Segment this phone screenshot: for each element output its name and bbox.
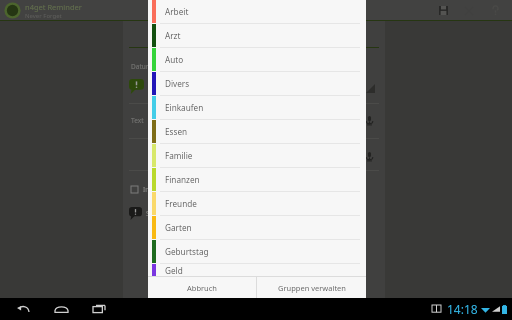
staticText: Arbeit [165, 6, 189, 17]
button[interactable]: Essen [148, 120, 366, 143]
button[interactable]: Divers [148, 72, 366, 95]
button[interactable]: Gruppen verwalten [257, 277, 366, 298]
staticText: Gruppen verwalten [278, 283, 346, 293]
staticText: Familie [165, 150, 193, 161]
button[interactable]: Help [482, 0, 508, 21]
staticText: Abbruch [187, 283, 217, 293]
button[interactable]: Save [430, 0, 456, 21]
button[interactable]: Freunde [148, 192, 366, 215]
staticText: Datum [131, 62, 152, 71]
staticText: Arzt [165, 30, 181, 41]
staticText: Standard [146, 209, 174, 218]
button[interactable]: Geburtstag [148, 240, 366, 263]
button[interactable]: Arbeit [148, 0, 366, 23]
staticText: Freunde [165, 198, 197, 209]
button[interactable]: Garten [148, 216, 366, 239]
staticText: Never Forget [25, 12, 62, 20]
button[interactable]: Back [10, 298, 36, 320]
staticText: Geld [165, 265, 183, 276]
staticText: Essen [165, 126, 188, 137]
staticText: n4get Reminder [25, 2, 82, 12]
staticText: Geburtstag [165, 246, 209, 257]
button[interactable]: Home [48, 298, 74, 320]
staticText: 14:18 [447, 301, 478, 317]
staticText: Finanzen [165, 174, 200, 185]
staticText: Text [131, 116, 144, 125]
button[interactable]: Abbruch [148, 277, 256, 298]
staticText: Einkaufen [165, 102, 204, 113]
button[interactable]: Recents [86, 298, 112, 320]
staticText: Garten [165, 222, 192, 233]
button[interactable]: Geld [148, 264, 366, 276]
button[interactable]: Familie [148, 144, 366, 167]
button[interactable]: Finanzen [148, 168, 366, 191]
button[interactable]: Cancel [456, 0, 482, 21]
button[interactable]: Auto [148, 48, 366, 71]
staticText: Divers [165, 78, 190, 89]
button[interactable]: Arzt [148, 24, 366, 47]
staticText: Auto [165, 54, 184, 65]
button[interactable]: Einkaufen [148, 96, 366, 119]
staticText: Intervall [143, 185, 169, 194]
